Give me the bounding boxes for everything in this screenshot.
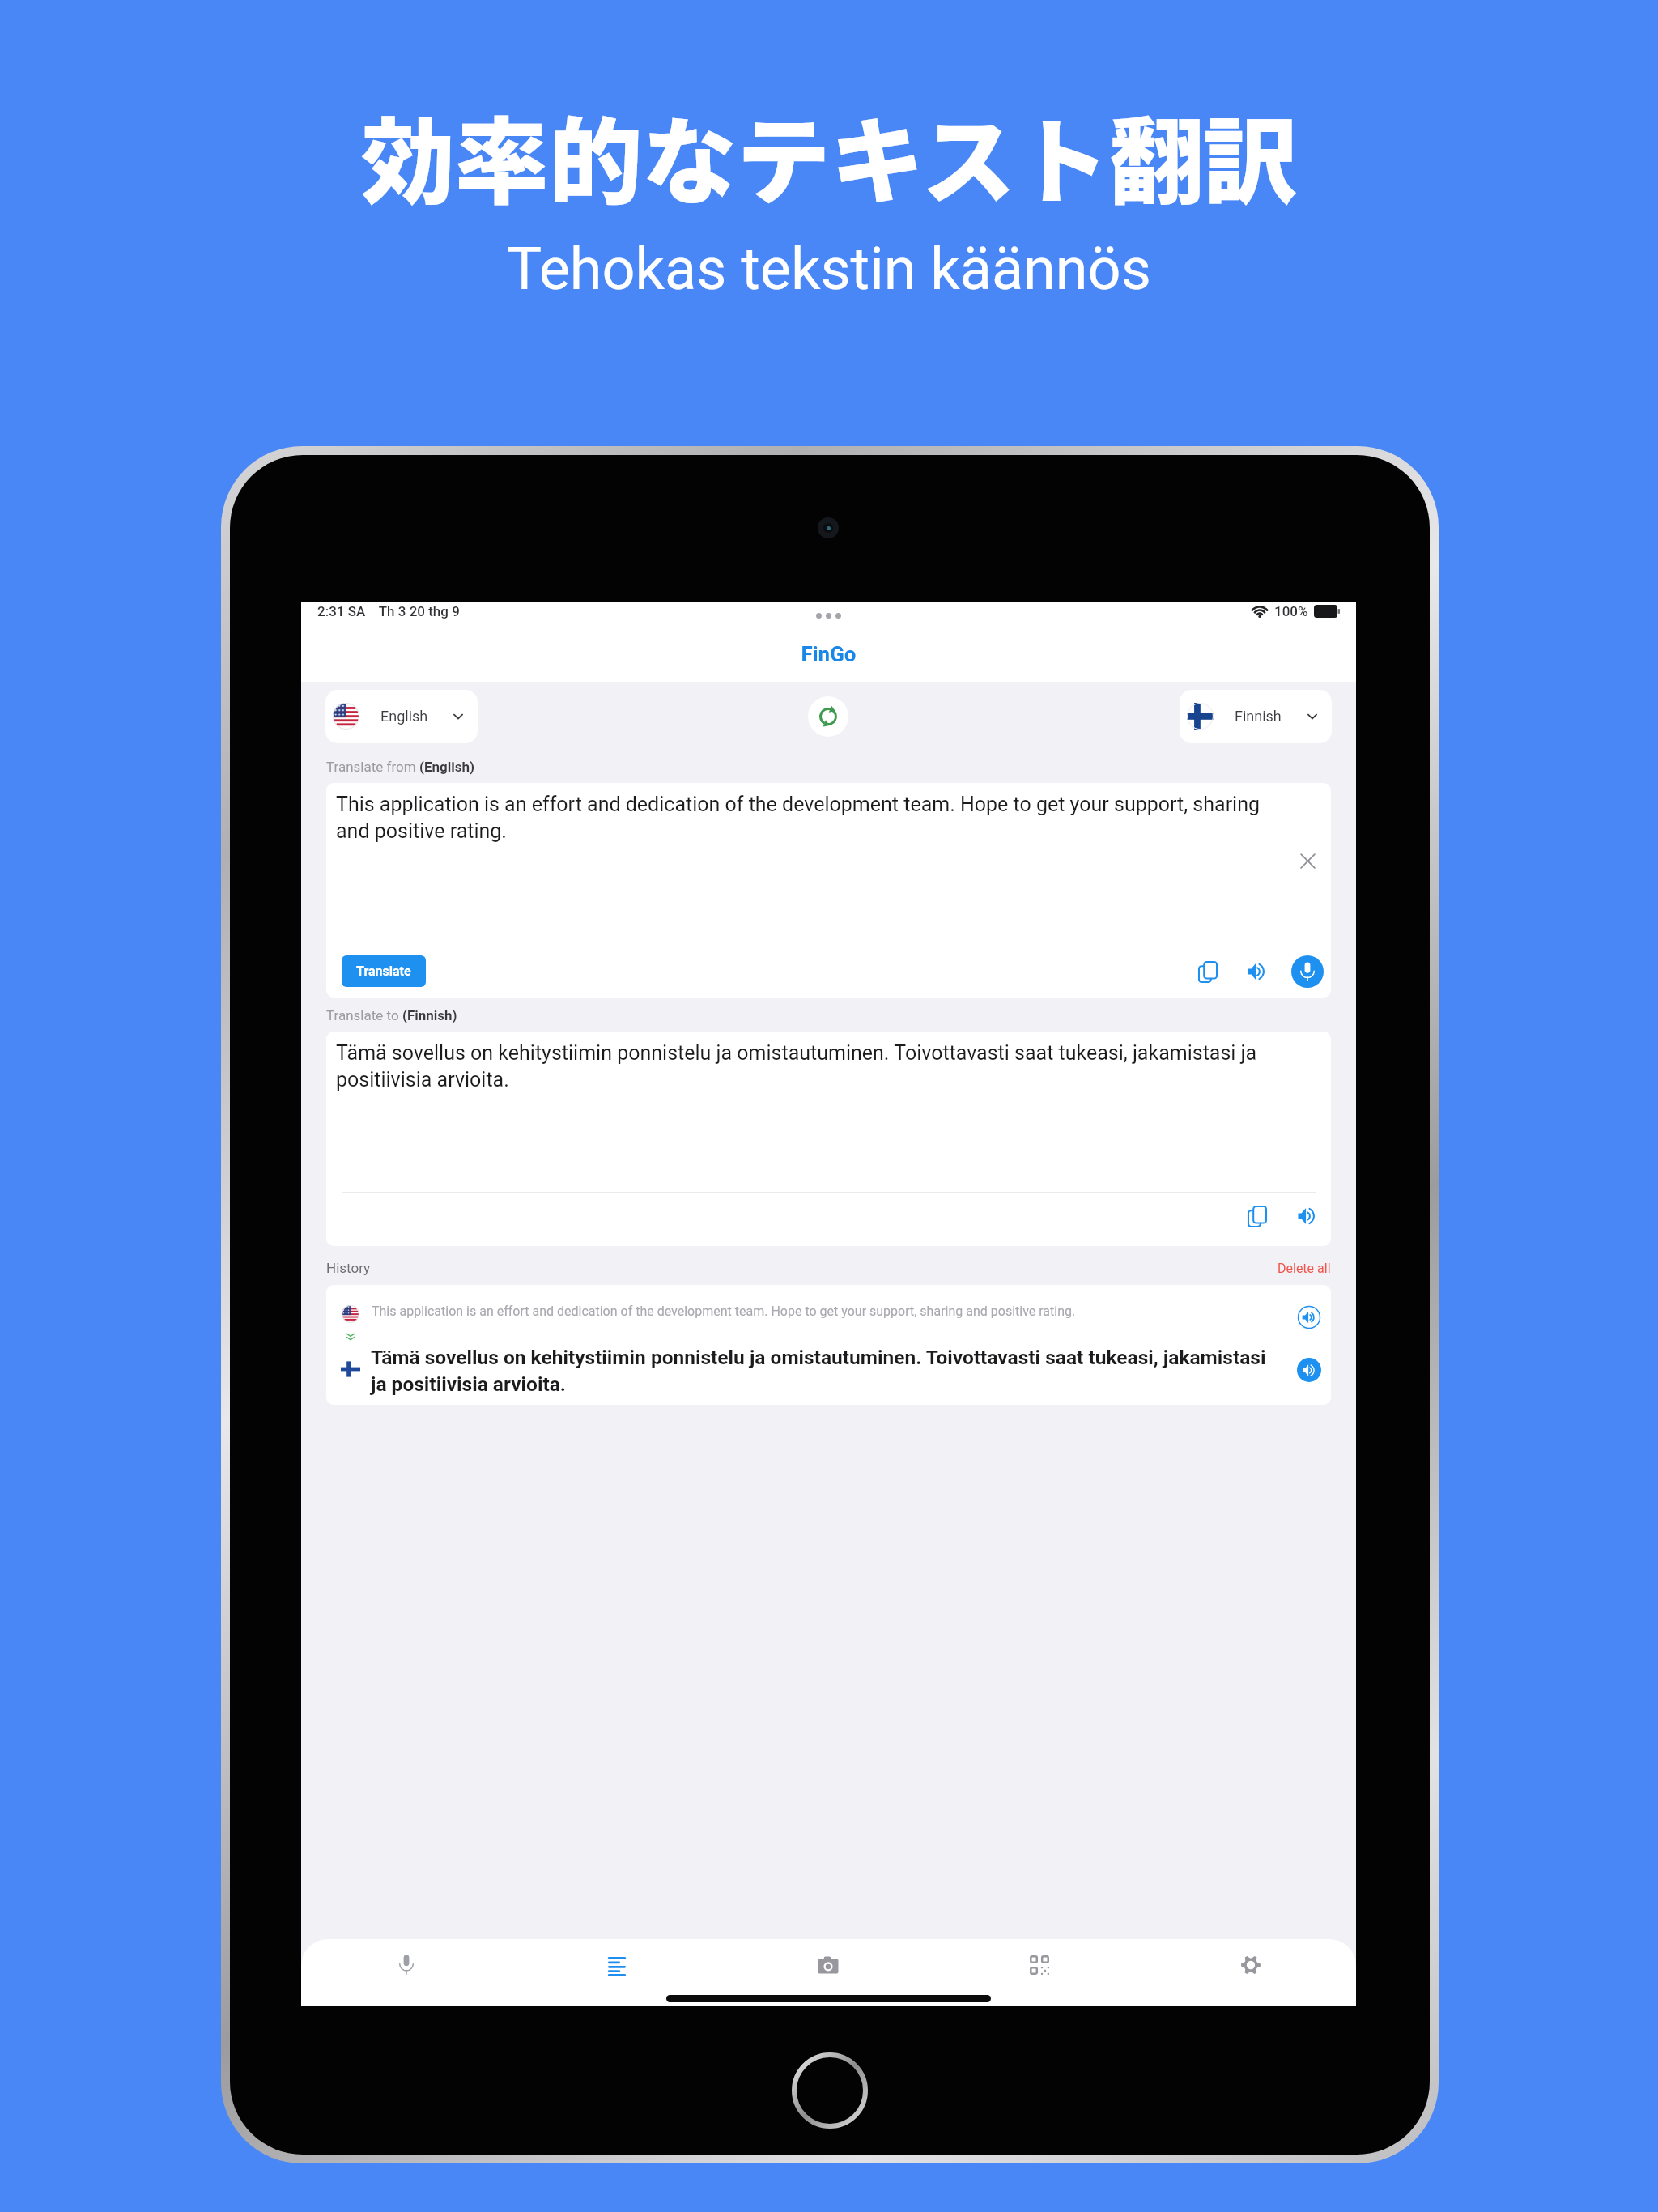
- staticText: This application is an effort and dedica…: [372, 1304, 1254, 1319]
- button[interactable]: Camera translate: [722, 1939, 933, 1990]
- button[interactable]: Voice input: [301, 1939, 512, 1990]
- staticText: Finnish: [1235, 708, 1282, 725]
- staticText: Delete all: [1278, 1261, 1331, 1276]
- button[interactable]: Swap languages: [808, 696, 848, 737]
- staticText: Tämä sovellus on kehitystiimin ponnistel…: [336, 1041, 1275, 1091]
- staticText: History: [326, 1260, 371, 1276]
- staticText: Tämä sovellus on kehitystiimin ponnistel…: [371, 1346, 1284, 1396]
- button[interactable]: Speak source text: [1239, 954, 1275, 989]
- staticText: (English): [419, 759, 475, 775]
- staticText: Tehokas tekstin käännös: [0, 235, 1658, 303]
- button[interactable]: Copy translation: [1239, 1198, 1275, 1234]
- button[interactable]: QR scan: [933, 1939, 1145, 1990]
- button[interactable]: Finnish: [1180, 690, 1332, 743]
- button[interactable]: Clear text: [1290, 843, 1325, 878]
- staticText: (Finnish): [402, 1007, 457, 1023]
- staticText: 効率的なテキスト翻訳: [0, 87, 1658, 223]
- button[interactable]: Text translate: [512, 1939, 722, 1990]
- button[interactable]: Speak translated: [1297, 1358, 1321, 1382]
- staticText: English: [380, 708, 428, 725]
- staticText: Translate: [356, 963, 411, 979]
- staticText: Translate to: [326, 1007, 402, 1023]
- staticText: This application is an effort and dedica…: [336, 793, 1275, 843]
- button[interactable]: Settings: [1145, 1939, 1356, 1990]
- button[interactable]: English: [325, 690, 478, 743]
- button[interactable]: Speak translation: [1290, 1198, 1325, 1234]
- button[interactable]: Voice input: [1291, 955, 1324, 988]
- button[interactable]: Delete all: [1278, 1261, 1331, 1276]
- staticText: FinGo: [301, 642, 1356, 666]
- staticText: Translate from: [326, 759, 419, 775]
- button[interactable]: Copy source text: [1190, 954, 1226, 989]
- button[interactable]: Translate: [342, 955, 426, 987]
- staticText: 2:31 SA Th 3 20 thg 9: [317, 603, 460, 619]
- staticText: 100%: [1274, 603, 1308, 619]
- button[interactable]: Speak original: [1293, 1301, 1325, 1334]
